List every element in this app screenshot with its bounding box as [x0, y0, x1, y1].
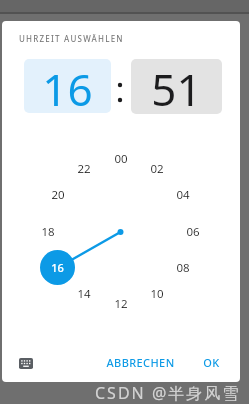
- staticText: 14: [77, 286, 91, 302]
- staticText: 04: [176, 187, 190, 203]
- staticText: 06: [186, 224, 200, 240]
- staticText: 02: [150, 161, 164, 177]
- staticText: 12: [114, 296, 128, 312]
- staticText: 18: [41, 224, 55, 240]
- staticText: OK: [203, 355, 220, 370]
- staticText: 08: [176, 260, 190, 276]
- staticText: ABBRECHEN: [106, 355, 175, 370]
- staticText: 16: [51, 260, 64, 275]
- button[interactable]: OK: [195, 349, 228, 376]
- button[interactable]: 51: [131, 59, 222, 114]
- staticText: 00: [114, 151, 128, 167]
- button[interactable]: ABBRECHEN: [98, 349, 183, 376]
- button[interactable]: 16: [40, 250, 75, 285]
- staticText: UHRZEIT AUSWÄHLEN: [19, 33, 124, 44]
- staticText: CSDN @半身风雪: [95, 382, 241, 404]
- button[interactable]: 16: [24, 59, 111, 113]
- staticText: 20: [51, 187, 65, 203]
- button[interactable]: [13, 352, 39, 374]
- staticText: 16: [42, 59, 93, 113]
- staticText: 51: [151, 59, 202, 114]
- staticText: 22: [77, 161, 91, 177]
- staticText: 10: [150, 286, 164, 302]
